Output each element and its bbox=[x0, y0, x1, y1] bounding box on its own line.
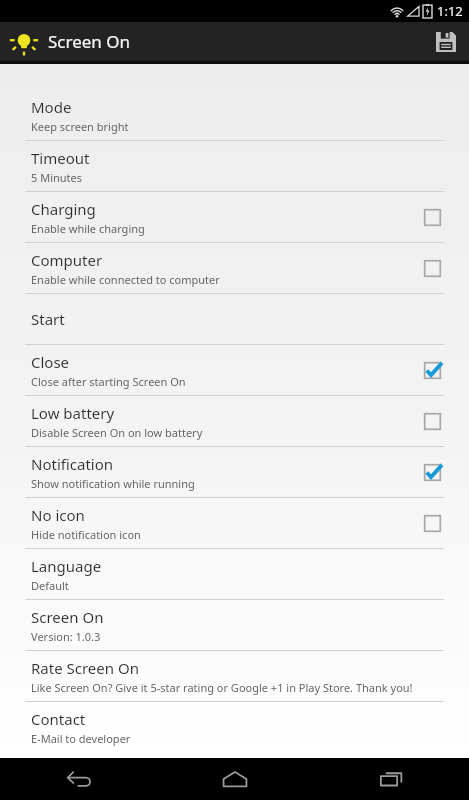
staticText: Low battery bbox=[31, 403, 115, 423]
button[interactable]: Home bbox=[157, 758, 313, 800]
button[interactable]: Rate Screen On bbox=[0, 651, 469, 701]
button[interactable]: Notification checkbox bbox=[415, 455, 449, 489]
staticText: Enable while connected to computer bbox=[31, 272, 220, 287]
staticText: Hide notification icon bbox=[31, 527, 141, 542]
button[interactable]: Charging bbox=[0, 192, 469, 242]
staticText: Screen On bbox=[48, 30, 131, 53]
staticText: Start bbox=[31, 309, 65, 329]
button[interactable]: Recent apps bbox=[313, 758, 469, 800]
staticText: Computer bbox=[31, 250, 103, 270]
staticText: Notification bbox=[31, 454, 114, 474]
staticText: Show notification while running bbox=[31, 476, 195, 491]
button[interactable]: Mode bbox=[0, 90, 469, 140]
button[interactable]: Charging checkbox bbox=[415, 200, 449, 234]
staticText: Close bbox=[31, 352, 70, 372]
button[interactable]: Close checkbox bbox=[415, 353, 449, 387]
button[interactable]: Computer bbox=[0, 243, 469, 293]
staticText: Contact bbox=[31, 709, 86, 729]
button[interactable]: Close bbox=[0, 345, 469, 395]
staticText: 5 Minutes bbox=[31, 170, 83, 185]
staticText: 1:12 bbox=[437, 2, 463, 20]
button[interactable]: No icon bbox=[0, 498, 469, 548]
button[interactable]: Language bbox=[0, 549, 469, 599]
button[interactable]: Save bbox=[423, 22, 469, 61]
staticText: Mode bbox=[31, 97, 72, 117]
button[interactable]: Contact bbox=[0, 702, 469, 752]
button[interactable]: Back bbox=[0, 758, 157, 800]
button[interactable]: Timeout bbox=[0, 141, 469, 191]
button[interactable]: No icon checkbox bbox=[415, 506, 449, 540]
button[interactable]: Computer checkbox bbox=[415, 251, 449, 285]
staticText: Timeout bbox=[31, 148, 90, 168]
button[interactable]: Start bbox=[0, 294, 469, 344]
staticText: Charging bbox=[31, 199, 96, 219]
button[interactable]: Low battery checkbox bbox=[415, 404, 449, 438]
staticText: Language bbox=[31, 556, 102, 576]
button[interactable]: Notification bbox=[0, 447, 469, 497]
staticText: Screen On bbox=[31, 607, 104, 627]
staticText: Like Screen On? Give it 5-star rating or… bbox=[31, 680, 413, 695]
button[interactable]: Low battery bbox=[0, 396, 469, 446]
staticText: Disable Screen On on low battery bbox=[31, 425, 203, 440]
button[interactable]: Screen On bbox=[0, 600, 469, 650]
staticText: Enable while charging bbox=[31, 221, 145, 236]
staticText: No icon bbox=[31, 505, 85, 525]
staticText: E-Mail to developer bbox=[31, 731, 131, 746]
staticText: Version: 1.0.3 bbox=[31, 629, 101, 644]
staticText: Close after starting Screen On bbox=[31, 374, 186, 389]
staticText: Rate Screen On bbox=[31, 658, 139, 678]
staticText: Keep screen bright bbox=[31, 119, 129, 134]
staticText: Default bbox=[31, 578, 69, 593]
